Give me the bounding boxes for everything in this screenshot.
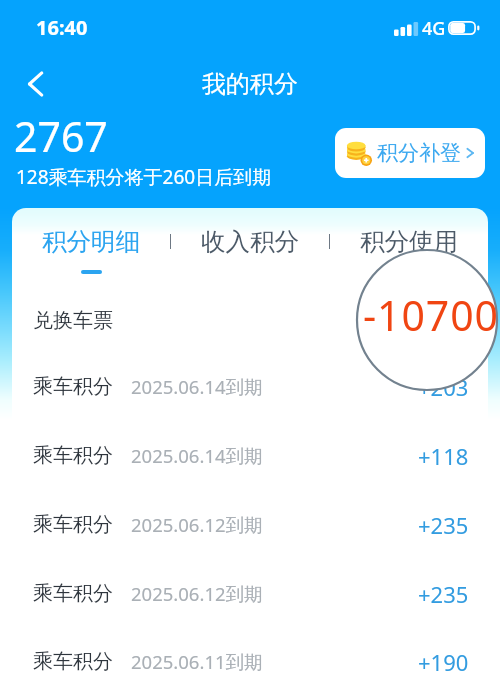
staticText: 我的积分 [202, 69, 298, 99]
button[interactable]: 乘车积分 [12, 490, 488, 559]
staticText: +203 [418, 372, 469, 402]
staticText: 乘车积分 [33, 512, 113, 537]
button[interactable]: 兑换车票 [12, 286, 488, 355]
staticText: 收入积分 [201, 226, 299, 257]
staticText: 128乘车积分将于260日后到期 [16, 164, 272, 190]
staticText: 兑换车票 [33, 308, 113, 333]
button[interactable]: Back [13, 61, 58, 106]
staticText: 积分补登 [377, 140, 461, 166]
staticText: 2025.06.11到期 [131, 649, 263, 674]
staticText: 乘车积分 [33, 649, 113, 674]
staticText: -10700 [363, 287, 499, 343]
staticText: +235 [418, 510, 469, 540]
staticText: 积分使用 [360, 226, 458, 257]
button[interactable]: 积分补登 [335, 128, 485, 178]
staticText: +235 [418, 579, 469, 609]
staticText: 4G [422, 16, 446, 41]
button[interactable]: 乘车积分 [12, 352, 488, 421]
staticText: 乘车积分 [33, 581, 113, 606]
staticText: 2025.06.14到期 [131, 443, 263, 468]
staticText: 16:40 [36, 14, 88, 41]
staticText: +190 [418, 647, 469, 677]
staticText: 乘车积分 [33, 374, 113, 399]
button[interactable]: 乘车积分 [12, 421, 488, 490]
button[interactable]: 积分使用 [329, 208, 488, 286]
staticText: -10700 [398, 306, 469, 336]
button[interactable]: 乘车积分 [12, 559, 488, 628]
button[interactable]: 收入积分 [170, 208, 329, 286]
staticText: 2025.06.14到期 [131, 374, 263, 399]
staticText: 2025.06.12到期 [131, 512, 263, 537]
staticText: 2767 [14, 108, 108, 164]
staticText: 2025.06.12到期 [131, 581, 263, 606]
staticText: +118 [418, 441, 469, 471]
staticText: 积分明细 [42, 226, 140, 257]
staticText: 乘车积分 [33, 443, 113, 468]
button[interactable]: 乘车积分 [12, 627, 488, 677]
button[interactable]: 积分明细 [12, 208, 170, 286]
